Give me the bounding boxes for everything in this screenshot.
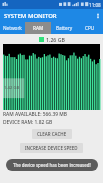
button[interactable]: CPU	[77, 22, 103, 34]
button[interactable]: More options	[92, 9, 103, 22]
staticText: RAM	[33, 25, 44, 31]
staticText: Network	[3, 25, 22, 31]
staticText: DEVICE RAM: 1.82 GB	[3, 119, 53, 126]
staticText: 1.42 GB	[4, 85, 20, 91]
staticText: CPU	[85, 25, 95, 31]
button[interactable]: RAM	[25, 22, 51, 34]
button[interactable]: INCREASE DEVICE SPEED	[20, 143, 83, 153]
staticText: The device speed has been increased!	[13, 162, 91, 168]
button[interactable]: CLEAR CACHE	[32, 129, 72, 139]
staticText: 11:08	[89, 2, 101, 8]
staticText: CLEAR CACHE	[37, 131, 67, 137]
staticText: 1.26 GB	[46, 36, 65, 43]
staticText: INCREASE DEVICE SPEED	[25, 145, 78, 151]
staticText: SYSTEM MONITOR	[4, 12, 57, 20]
staticText: Battery	[56, 25, 73, 31]
button[interactable]: Network	[0, 22, 25, 34]
staticText: RAM AVAILABLE: 566.39 MB	[3, 111, 68, 118]
button[interactable]: Battery	[51, 22, 77, 34]
